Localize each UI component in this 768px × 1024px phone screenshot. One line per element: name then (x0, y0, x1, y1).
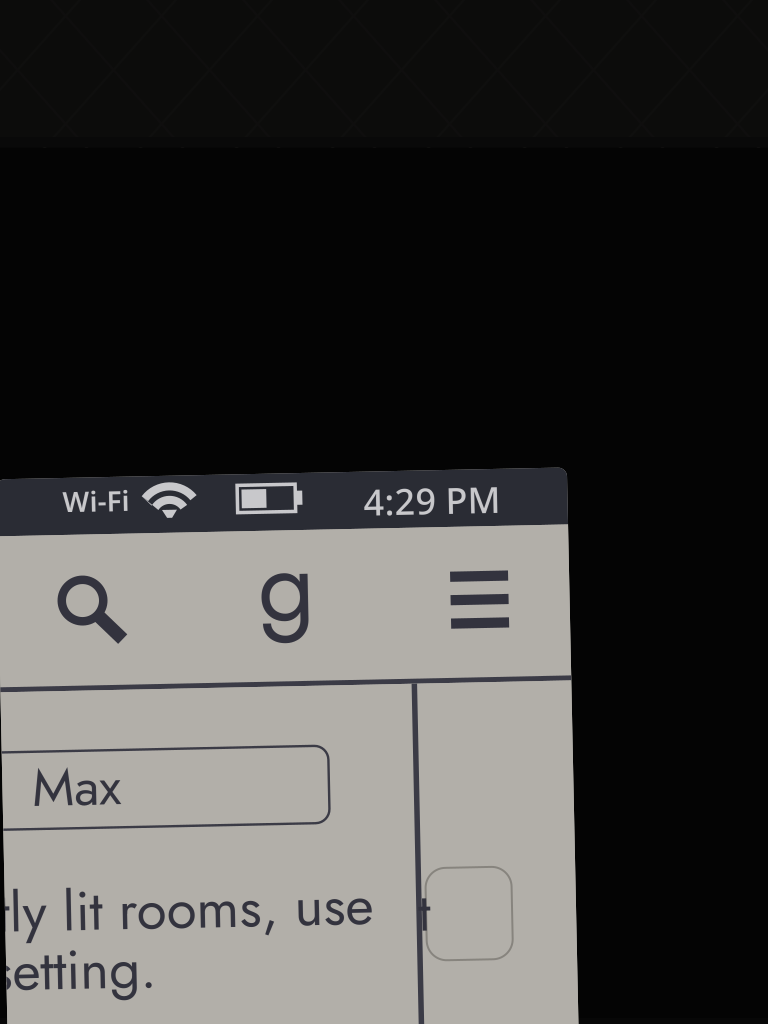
button[interactable]: Menu (425, 526, 545, 682)
button[interactable]: Max (0, 746, 330, 824)
staticText: Max (34, 745, 123, 820)
button[interactable]: Font and layout settings (232, 507, 352, 663)
staticText: Wi-Fi (70, 478, 137, 515)
button[interactable]: Option (425, 871, 511, 963)
staticText: g (263, 513, 320, 657)
staticText: tly lit rooms, use (0, 867, 372, 946)
button[interactable]: Search (40, 531, 160, 687)
staticText: setting. (0, 926, 154, 1005)
staticText: 4:29 PM (371, 479, 508, 527)
staticText: t (417, 878, 429, 953)
